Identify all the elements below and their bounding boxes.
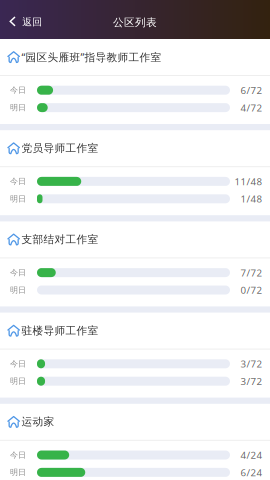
staticText: 今日 (10, 359, 26, 369)
staticText: 明日 (10, 194, 26, 204)
staticText: 11/48 (234, 175, 262, 188)
button[interactable]: 支部结对工作室 (0, 221, 270, 257)
staticText: 今日 (10, 268, 26, 278)
staticText: 6/72 (240, 84, 262, 97)
staticText: 支部结对工作室 (22, 233, 99, 246)
staticText: 3/72 (240, 375, 262, 388)
staticText: 明日 (10, 285, 26, 295)
button[interactable]: 驻楼导师工作室 (0, 313, 270, 349)
staticText: 驻楼导师工作室 (22, 324, 99, 337)
staticText: 4/72 (240, 101, 262, 114)
staticText: 返回 (22, 16, 42, 28)
staticText: 0/72 (240, 283, 262, 297)
button[interactable]: 运动家 (0, 404, 270, 440)
staticText: 今日 (10, 85, 26, 95)
staticText: 明日 (10, 103, 26, 113)
staticText: 今日 (10, 450, 26, 460)
button[interactable]: “园区头雁班”指导教师工作室 (0, 39, 270, 75)
staticText: 1/48 (240, 192, 262, 205)
button[interactable]: 党员导师工作室 (0, 130, 270, 166)
staticText: 党员导师工作室 (22, 141, 99, 155)
staticText: 明日 (10, 376, 26, 386)
staticText: 运动家 (22, 415, 55, 428)
staticText: 公区列表 (113, 16, 157, 29)
staticText: 今日 (10, 176, 26, 186)
staticText: 3/72 (240, 357, 262, 370)
staticText: 6/24 (240, 466, 262, 479)
staticText: 4/24 (240, 448, 262, 462)
staticText: 7/72 (240, 266, 262, 279)
staticText: “园区头雁班”指导教师工作室 (22, 50, 162, 64)
staticText: 明日 (10, 467, 26, 477)
button[interactable]: 返回 (0, 0, 54, 39)
